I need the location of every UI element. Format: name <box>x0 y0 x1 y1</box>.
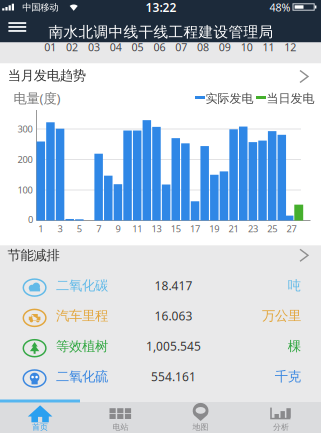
staticText: 18.417 <box>155 278 193 293</box>
staticText: 09 <box>219 40 231 54</box>
staticText: 16.063 <box>155 308 193 324</box>
button[interactable]: 03 <box>88 40 100 54</box>
staticText: 11 <box>262 40 274 54</box>
staticText: 23 <box>248 222 258 235</box>
button[interactable]: 当月发电趋势 <box>0 63 321 89</box>
staticText: 1 <box>38 222 43 235</box>
staticText: 1,005.545 <box>146 338 201 354</box>
staticText: 千克 <box>275 368 301 385</box>
button[interactable]: 地图 <box>161 402 241 433</box>
staticText: 15 <box>171 222 181 235</box>
staticText: 9 <box>115 222 120 235</box>
staticText: 02 <box>66 40 78 54</box>
button[interactable]: 08 <box>197 40 209 54</box>
staticText: 万公里 <box>262 308 301 324</box>
staticText: 554.161 <box>151 368 196 384</box>
staticText: 19 <box>209 222 219 235</box>
staticText: 06 <box>153 40 165 54</box>
button[interactable]: 电站 <box>80 402 160 433</box>
staticText: 中国移动 <box>22 2 58 13</box>
staticText: 08 <box>197 40 209 54</box>
staticText: 等效植树 <box>56 338 108 354</box>
staticText: 分析 <box>273 422 289 432</box>
button[interactable]: 07 <box>175 40 187 54</box>
staticText: 3 <box>58 222 63 235</box>
button[interactable]: 06 <box>153 40 165 54</box>
staticText: 首页 <box>32 422 48 432</box>
staticText: 汽车里程 <box>56 308 108 324</box>
staticText: 04 <box>110 40 122 54</box>
staticText: 03 <box>88 40 100 54</box>
staticText: 01 <box>44 40 56 54</box>
staticText: 21 <box>229 222 239 235</box>
staticText: 电量(度) <box>13 89 60 107</box>
staticText: 13 <box>151 222 161 235</box>
staticText: 5 <box>77 222 82 235</box>
staticText: 300 <box>17 123 32 135</box>
button[interactable]: 12 <box>284 40 296 54</box>
staticText: 地图 <box>193 422 209 432</box>
button[interactable]: 首页 <box>0 402 80 433</box>
staticText: 节能减排 <box>8 247 60 263</box>
button[interactable]: 09 <box>219 40 231 54</box>
staticText: 05 <box>132 40 144 54</box>
staticText: 48% <box>269 0 290 14</box>
staticText: 当月发电趋势 <box>8 67 86 84</box>
staticText: 07 <box>175 40 187 54</box>
staticText: 南水北调中线干线工程建设管理局 <box>48 23 273 41</box>
button[interactable]: 04 <box>110 40 122 54</box>
staticText: 12 <box>284 40 296 54</box>
button[interactable] <box>5 19 29 37</box>
staticText: 二氧化碳 <box>56 277 108 294</box>
staticText: 200 <box>17 153 32 166</box>
staticText: 17 <box>190 222 200 235</box>
button[interactable]: 10 <box>241 40 253 54</box>
button[interactable]: 02 <box>66 40 78 54</box>
staticText: 25 <box>267 222 277 235</box>
button[interactable]: 节能减排 <box>0 243 321 267</box>
staticText: 棵 <box>288 338 301 354</box>
button[interactable]: 05 <box>132 40 144 54</box>
button[interactable]: 分析 <box>241 402 321 433</box>
staticText: 10 <box>241 40 253 54</box>
staticText: 吨 <box>288 277 301 294</box>
staticText: 二氧化硫 <box>56 368 108 385</box>
staticText: 电站 <box>112 422 128 432</box>
staticText: 100 <box>17 184 32 196</box>
button[interactable]: 11 <box>262 40 274 54</box>
staticText: 实际发电 <box>205 91 253 106</box>
staticText: 0 <box>28 213 33 226</box>
button[interactable]: 01 <box>44 40 56 54</box>
staticText: 13:22 <box>145 0 176 15</box>
staticText: 11 <box>132 222 142 235</box>
staticText: 当日发电 <box>266 91 314 106</box>
staticText: 27 <box>286 222 296 235</box>
staticText: 7 <box>96 222 101 235</box>
